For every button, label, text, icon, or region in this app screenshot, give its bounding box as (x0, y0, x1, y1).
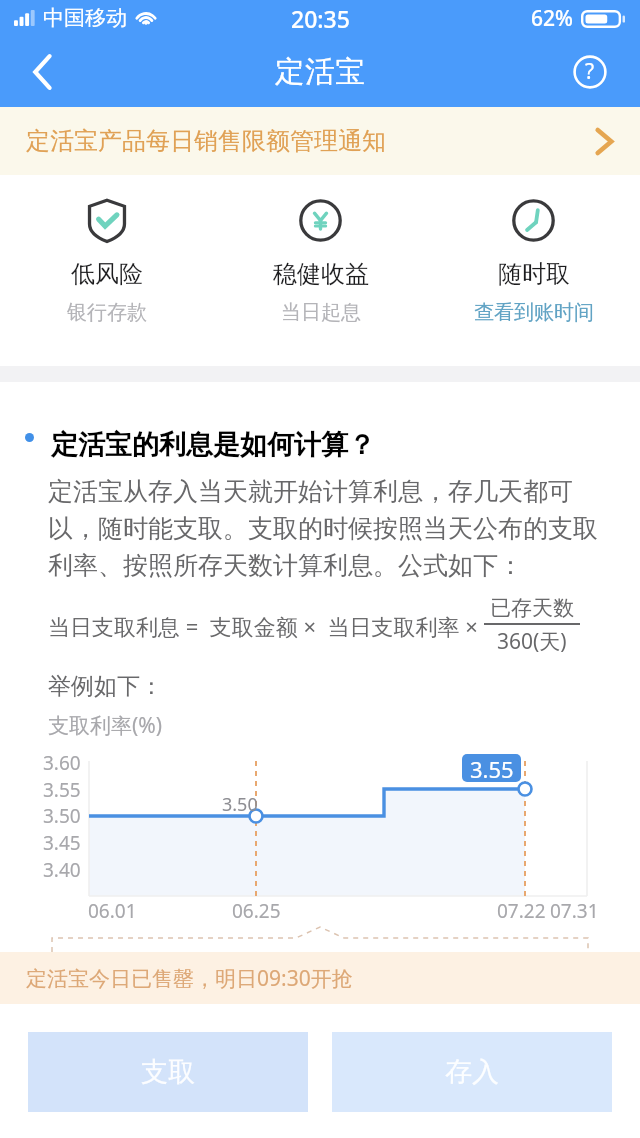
staticText: 定活宝的利息是如何计算？ (51, 428, 375, 462)
staticText: 定活宝产品每日销售限额管理通知 (26, 126, 596, 156)
staticText: 3.55 (43, 777, 81, 803)
button[interactable]: 定活宝产品每日销售限额管理通知 (0, 107, 640, 175)
staticText: 定活宝 (275, 53, 365, 91)
staticText: 3.60 (43, 750, 81, 776)
staticText: 3.40 (43, 857, 81, 883)
staticText: 07.31 (550, 898, 599, 924)
staticText: 定活宝今日已售罄，明日09:30开抢 (26, 964, 353, 993)
staticText: 随时取 (498, 259, 570, 289)
staticText: ? (585, 57, 595, 86)
staticText: 举例如下： (48, 672, 163, 701)
staticText: 银行存款 (67, 300, 147, 325)
button[interactable]: 存入 (332, 1032, 612, 1112)
staticText: 当日起息 (281, 300, 361, 325)
staticText: 已存天数 (490, 595, 574, 621)
staticText: 查看到账时间 (474, 300, 594, 325)
staticText: 62% (531, 4, 573, 33)
staticText: 20:35 (291, 3, 350, 34)
staticText: 定活宝从存入当天就开始计算利息，存几天都可以，随时能支取。支取的时候按照当天公布… (48, 476, 606, 581)
button[interactable]: Help (568, 50, 612, 94)
staticText: 3.55 (470, 754, 514, 782)
staticText: 06.01 (88, 898, 137, 924)
staticText: 低风险 (71, 259, 143, 289)
button[interactable]: 稳健收益 (214, 199, 427, 325)
button[interactable]: 低风险 (0, 199, 214, 325)
button[interactable]: 随时取 (427, 199, 640, 325)
staticText: 支取 (141, 1055, 195, 1089)
staticText: 中国移动 (43, 5, 127, 31)
staticText: 存入 (445, 1055, 499, 1089)
staticText: 07.22 (497, 898, 546, 924)
button[interactable]: 支取 (28, 1032, 308, 1112)
staticText: 3.50 (222, 792, 258, 817)
staticText: 360(天) (497, 627, 567, 656)
staticText: 3.45 (43, 830, 81, 856)
button[interactable]: Back (16, 46, 68, 98)
staticText: 稳健收益 (273, 259, 369, 289)
staticText: 3.50 (43, 803, 81, 829)
staticText: 当日支取利息 = 支取金额 × 当日支取利率 × (48, 611, 484, 641)
staticText: 支取利率(%) (48, 711, 163, 740)
staticText: 06.25 (232, 898, 281, 924)
